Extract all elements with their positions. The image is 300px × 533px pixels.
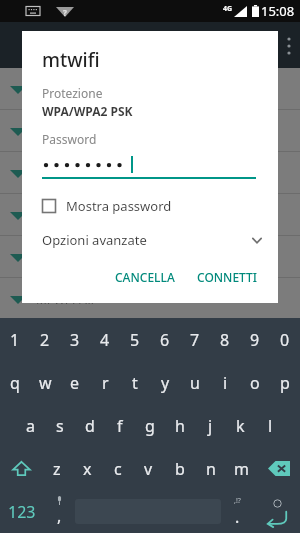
button[interactable]: Mostra password (42, 197, 266, 215)
button[interactable]: x (72, 447, 102, 490)
button[interactable]: v (133, 447, 164, 490)
staticText: 5 (130, 329, 140, 351)
button[interactable]: g (135, 404, 165, 447)
button[interactable]: n (195, 447, 226, 490)
button[interactable]: b (164, 447, 195, 490)
staticText: ,!? (234, 496, 241, 506)
staticText: h (175, 415, 185, 437)
button[interactable]: f (105, 404, 135, 447)
button[interactable]: 123 (0, 490, 43, 533)
staticText: Password (42, 131, 97, 147)
staticText: 4G (223, 4, 233, 14)
staticText: 0 (280, 329, 290, 351)
button[interactable]: e (60, 361, 90, 404)
staticText: e (70, 372, 80, 394)
button[interactable]: 0 (270, 318, 300, 361)
staticText: 123 (8, 501, 36, 523)
staticText: b (175, 458, 185, 480)
staticText: m (234, 458, 249, 480)
staticText: a (26, 415, 35, 437)
staticText: 3 (70, 329, 80, 351)
staticText: k (236, 415, 245, 437)
button[interactable]: h (165, 404, 195, 447)
staticText: d (85, 415, 95, 437)
button[interactable]: 2 (30, 318, 60, 361)
staticText: 9 (250, 329, 260, 351)
button[interactable]: 6 (150, 318, 180, 361)
staticText: z (53, 458, 61, 480)
button[interactable]: y (150, 361, 180, 404)
staticText: g (145, 415, 155, 437)
button[interactable]: CONNETTI (189, 263, 266, 291)
staticText: u (190, 372, 200, 394)
button[interactable]: r (90, 361, 120, 404)
staticText: 1 (10, 329, 20, 351)
staticText: r (102, 372, 109, 394)
button[interactable]: Shift (0, 447, 42, 490)
staticText: 7 (190, 329, 200, 351)
staticText: Mi-Wi-Fi ... (36, 291, 98, 307)
button[interactable]: t (120, 361, 150, 404)
button[interactable]: 4 (90, 318, 120, 361)
button[interactable]: j (195, 404, 225, 447)
button[interactable]: CANCELLA (107, 263, 183, 291)
button[interactable]: l (255, 404, 285, 447)
button[interactable]: 5 (120, 318, 150, 361)
button[interactable]: k (225, 404, 255, 447)
staticText: 8 (220, 329, 230, 351)
staticText: v (144, 458, 153, 480)
staticText: n (206, 458, 216, 480)
staticText: f (117, 415, 123, 437)
staticText: 6 (160, 329, 170, 351)
staticText: mtwifi (42, 47, 100, 73)
button[interactable]: p (270, 361, 300, 404)
button[interactable]: Enter (253, 490, 300, 533)
button[interactable]: Backspace (257, 447, 300, 490)
button[interactable]: w (30, 361, 60, 404)
button[interactable]: i (210, 361, 240, 404)
staticText: y (161, 372, 170, 394)
staticText: CANCELLA (115, 269, 175, 285)
button[interactable]: m (226, 447, 257, 490)
button[interactable]: Opzioni avanzate (42, 231, 266, 249)
button[interactable]: 7 (180, 318, 210, 361)
button[interactable]: ,!? (221, 490, 253, 533)
staticText: l (268, 415, 273, 437)
staticText: Opzioni avanzate (42, 231, 250, 249)
staticText: WPA/WPA2 PSK (42, 103, 133, 119)
staticText: i (223, 372, 228, 394)
staticText: t (132, 372, 138, 394)
staticText: 15:08 (261, 2, 295, 20)
button[interactable]: u (180, 361, 210, 404)
button[interactable]: d (75, 404, 105, 447)
button[interactable]: 8 (210, 318, 240, 361)
staticText: s (56, 415, 64, 437)
staticText: Mostra password (66, 197, 172, 215)
staticText: w (39, 372, 52, 394)
button[interactable]: q (0, 361, 30, 404)
staticText: x (83, 458, 92, 480)
button[interactable]: 3 (60, 318, 90, 361)
staticText: Protezione (42, 85, 103, 101)
staticText: j (208, 415, 213, 437)
button[interactable]: o (240, 361, 270, 404)
button[interactable]: z (42, 447, 72, 490)
staticText: p (280, 372, 290, 394)
staticText: . (235, 506, 240, 528)
button[interactable]: 9 (240, 318, 270, 361)
staticText: q (10, 372, 20, 394)
staticText: 4 (100, 329, 110, 351)
button[interactable]: s (45, 404, 75, 447)
button[interactable] (42, 155, 266, 179)
staticText: c (114, 458, 122, 480)
staticText: 2 (40, 329, 50, 351)
staticText: o (250, 372, 260, 394)
button[interactable]: c (102, 447, 133, 490)
button[interactable]: , (43, 490, 75, 533)
staticText: , (57, 505, 62, 527)
staticText: ? (63, 7, 67, 18)
staticText: CONNETTI (197, 269, 258, 285)
button[interactable]: a (15, 404, 45, 447)
button[interactable]: 1 (0, 318, 30, 361)
